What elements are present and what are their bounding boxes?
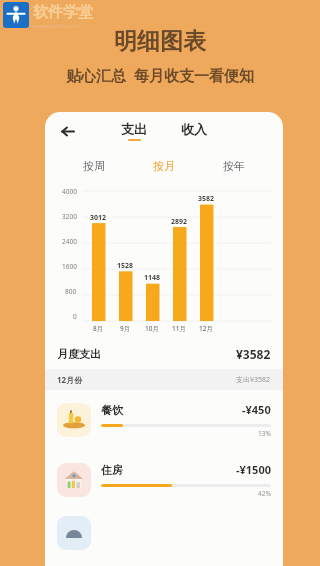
staticText: 9月 xyxy=(120,324,131,333)
staticText: ¥3582 xyxy=(236,346,271,362)
staticText: -¥450 xyxy=(242,402,271,417)
staticText: 12月 xyxy=(199,324,213,333)
staticText: 1148 xyxy=(144,273,161,283)
staticText: 13% xyxy=(258,429,271,438)
staticText: 2892 xyxy=(171,217,188,227)
button[interactable]: 住房 xyxy=(45,450,283,510)
button[interactable] xyxy=(45,510,283,550)
staticText: 收入 xyxy=(181,121,207,137)
staticText: 支出¥3582 xyxy=(236,375,271,385)
staticText: 支出 xyxy=(121,121,147,137)
staticText: 按周 xyxy=(83,159,105,173)
staticText: 1600 xyxy=(62,262,77,271)
staticText: www.sue51.com xyxy=(33,22,80,30)
button[interactable]: 按周 xyxy=(75,155,113,177)
staticText: 800 xyxy=(65,287,77,296)
staticText: 软件学堂 xyxy=(33,3,93,22)
button[interactable]: 支出 xyxy=(116,113,152,149)
staticText: 住房 xyxy=(101,463,123,477)
staticText: 4000 xyxy=(62,187,77,196)
staticText: 3012 xyxy=(90,213,107,223)
staticText: 12月份 xyxy=(57,374,83,385)
staticText: 8月 xyxy=(93,324,104,333)
staticText: 按月 xyxy=(153,159,175,173)
staticText: 贴心汇总 每月收支一看便知 xyxy=(66,65,254,85)
staticText: 0 xyxy=(73,312,77,321)
staticText: 42% xyxy=(258,489,271,498)
staticText: -¥1500 xyxy=(236,462,271,477)
button[interactable]: Back xyxy=(54,118,80,144)
staticText: 3200 xyxy=(62,212,77,221)
staticText: 11月 xyxy=(172,324,186,333)
staticText: 明细图表 xyxy=(114,27,206,56)
staticText: 月度支出 xyxy=(57,347,101,361)
button[interactable]: 按月 xyxy=(145,155,183,177)
button[interactable]: 收入 xyxy=(176,113,212,149)
button[interactable]: 餐饮 xyxy=(45,390,283,450)
staticText: 1528 xyxy=(117,261,134,271)
staticText: 餐饮 xyxy=(101,403,123,417)
staticText: 3582 xyxy=(198,194,215,204)
staticText: 按年 xyxy=(223,159,245,173)
staticText: 10月 xyxy=(145,324,159,333)
staticText: 2400 xyxy=(62,237,77,246)
button[interactable]: 按年 xyxy=(215,155,253,177)
